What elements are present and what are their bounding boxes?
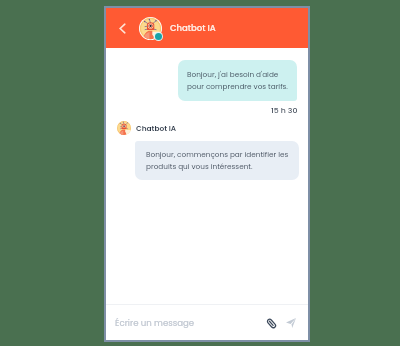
button[interactable]: Attach file <box>264 316 278 330</box>
button[interactable]: Back <box>106 8 139 48</box>
staticText: Bonjour, j'ai besoin d'aide pour compren… <box>187 69 288 91</box>
staticText: Bonjour, commençons par identifier les p… <box>146 149 289 171</box>
staticText: Écrire un message <box>115 317 195 329</box>
staticText: Chatbot IA <box>170 22 216 34</box>
button[interactable]: Bonjour, commençons par identifier les p… <box>135 141 299 180</box>
staticText: 15 h 30 <box>271 105 298 116</box>
button[interactable]: Send <box>285 317 297 329</box>
button[interactable]: Bonjour, j'ai besoin d'aide pour compren… <box>178 60 297 101</box>
staticText: Chatbot IA <box>136 123 177 133</box>
